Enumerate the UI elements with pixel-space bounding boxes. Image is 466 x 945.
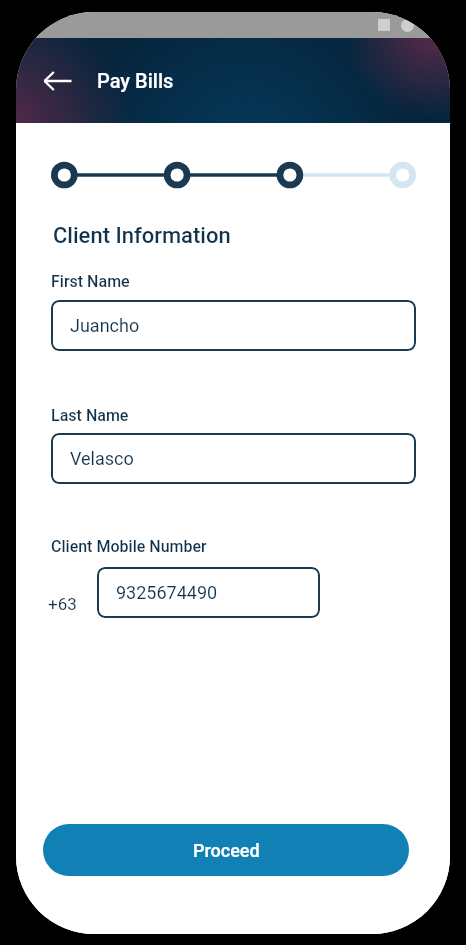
staticText: 9325674490 [116,582,218,603]
staticText: Pay Bills [97,69,174,92]
staticText: Client Information [53,223,231,249]
staticText: Velasco [70,448,134,469]
button[interactable]: Velasco [51,433,416,484]
button[interactable]: 9325674490 [97,567,320,618]
staticText: Last Name [51,406,129,425]
staticText: Client Mobile Number [51,537,207,556]
button[interactable]: Proceed [43,824,409,876]
button[interactable]: Juancho [51,300,416,351]
staticText: Proceed [193,840,260,861]
button[interactable]: Back [37,60,79,102]
staticText: First Name [51,272,130,291]
staticText: +63 [48,594,77,614]
staticText: Juancho [70,315,140,336]
